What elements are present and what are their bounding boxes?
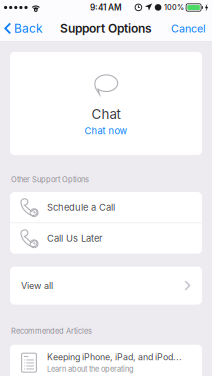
button[interactable]: Keeping iPhone, iPad, and iPod... — [10, 345, 202, 376]
staticText: View all — [21, 280, 53, 291]
staticText: Support Options — [60, 21, 152, 36]
staticText: Call Us Later — [47, 233, 103, 244]
button[interactable]: Back — [0, 15, 49, 42]
button[interactable]: Chat — [10, 52, 202, 155]
staticText: Other Support Options — [11, 175, 89, 184]
staticText: 100% — [164, 3, 184, 12]
staticText: Keeping iPhone, iPad, and iPod... — [47, 352, 182, 362]
staticText: Learn about the operating — [47, 364, 134, 373]
button[interactable]: Schedule a Call — [10, 192, 202, 222]
staticText: Chat now — [84, 125, 127, 136]
staticText: Schedule a Call — [47, 202, 115, 213]
staticText: Back — [14, 21, 43, 36]
staticText: Chat — [91, 106, 120, 122]
staticText: Recommended Articles — [11, 327, 92, 336]
staticText: Cancel — [171, 22, 206, 35]
button[interactable]: Cancel — [165, 15, 212, 42]
button[interactable]: Call Us Later — [10, 223, 202, 254]
staticText: 9:41 AM — [90, 2, 122, 12]
button[interactable]: View all — [10, 267, 202, 305]
